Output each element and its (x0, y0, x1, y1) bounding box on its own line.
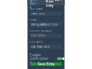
staticText: Location (30, 40, 43, 44)
staticText: San Francisco (31, 45, 50, 48)
staticText: jane@example.com (31, 23, 57, 26)
staticText: Full Name (30, 7, 43, 10)
staticText: Enable notifications (30, 53, 49, 64)
staticText: New Entry (45, 0, 53, 8)
staticText: Phone Number (30, 29, 52, 33)
staticText: 9:41 (30, 0, 36, 1)
button[interactable]: Save Entry (30, 62, 62, 66)
staticText: 555 0134 (31, 34, 45, 37)
staticText: ‹ Back (30, 0, 37, 9)
staticText: Jane Doe (31, 12, 45, 15)
staticText: ▮▮ ▰ (55, 0, 62, 1)
staticText: Save Entry (37, 62, 54, 66)
button[interactable]: ‹ Back (30, 0, 37, 9)
button[interactable]: Enable notifications (57, 57, 62, 60)
staticText: Email (30, 18, 37, 22)
